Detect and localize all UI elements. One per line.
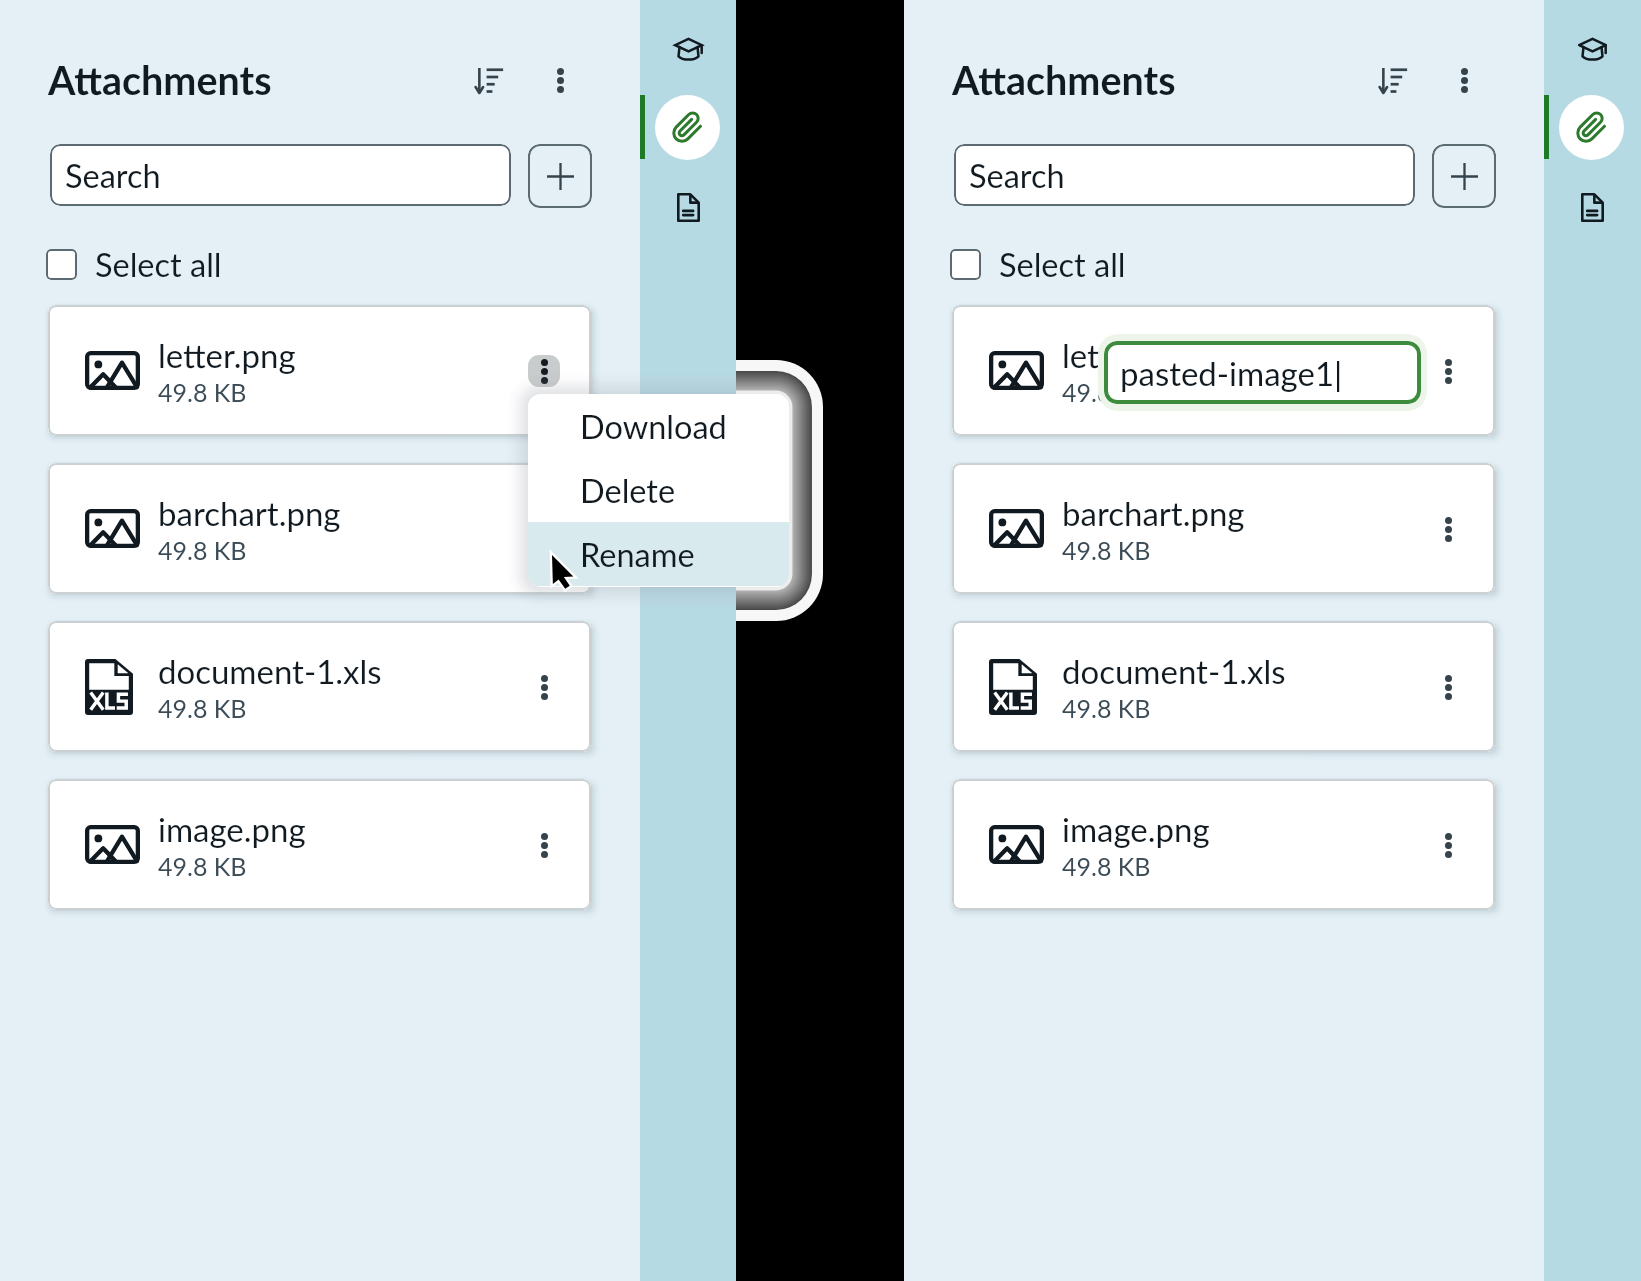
button[interactable]: File options [521, 822, 567, 868]
button[interactable]: Rename [528, 522, 789, 586]
staticText: barchart.png [158, 493, 341, 533]
staticText: 49.8 KB [158, 377, 247, 407]
button[interactable]: barchart.png [48, 463, 591, 594]
button[interactable]: document-1.xls [952, 621, 1495, 752]
staticText: document-1.xls [158, 651, 382, 691]
staticText: Attachments [952, 56, 1176, 103]
button[interactable]: More options [536, 56, 584, 104]
staticText: 49.8 KB [1062, 377, 1151, 407]
staticText: 49.8 KB [1062, 851, 1151, 881]
staticText: Select all [95, 245, 222, 284]
button[interactable]: Delete [528, 458, 789, 522]
staticText: Attachments [48, 56, 272, 103]
button[interactable]: image.png [952, 779, 1495, 910]
button[interactable]: Documents [1560, 175, 1624, 239]
button[interactable]: Attachments [655, 95, 720, 160]
button[interactable]: letter.png [48, 305, 591, 436]
staticText: document-1.xls [1062, 651, 1286, 691]
button[interactable]: Add attachment [1432, 144, 1496, 208]
button[interactable]: File options [1425, 664, 1471, 710]
button[interactable]: image.png [48, 779, 591, 910]
button[interactable]: Download [528, 394, 789, 458]
staticText: pasted-image1| [1120, 353, 1343, 393]
button[interactable]: Select all [46, 242, 222, 286]
button[interactable]: document-1.xls [48, 621, 591, 752]
staticText: letter.png [158, 335, 296, 375]
button[interactable]: Search [50, 144, 511, 206]
staticText: 49.8 KB [158, 851, 247, 881]
button[interactable]: Add attachment [528, 144, 592, 208]
staticText: Delete [580, 471, 676, 510]
button[interactable]: More options [1440, 56, 1488, 104]
button[interactable]: letter.png [952, 305, 1495, 436]
button[interactable]: Learning [1560, 16, 1624, 80]
staticText: Select all [999, 245, 1126, 284]
button[interactable]: File options [521, 664, 567, 710]
staticText: Search [65, 156, 161, 195]
button[interactable]: Search [954, 144, 1415, 206]
button[interactable]: Documents [656, 175, 720, 239]
staticText: 49.8 KB [1062, 535, 1151, 565]
button[interactable]: Sort [465, 56, 513, 104]
staticText: Download [580, 407, 727, 446]
button[interactable]: File options [1425, 822, 1471, 868]
button[interactable]: File options [1425, 506, 1471, 552]
button[interactable]: Sort [1369, 56, 1417, 104]
button[interactable]: File options [521, 348, 567, 394]
button[interactable]: File options [1425, 348, 1471, 394]
staticText: letter.png [1062, 335, 1200, 375]
button[interactable]: Select all [950, 242, 1126, 286]
button[interactable]: File options [521, 506, 567, 552]
staticText: Rename [580, 535, 695, 574]
staticText: 49.8 KB [158, 535, 247, 565]
button[interactable]: Learning [656, 16, 720, 80]
button[interactable]: pasted-image1| [1104, 341, 1421, 404]
staticText: image.png [1062, 809, 1210, 849]
staticText: 49.8 KB [1062, 693, 1151, 723]
staticText: image.png [158, 809, 306, 849]
staticText: barchart.png [1062, 493, 1245, 533]
staticText: 49.8 KB [158, 693, 247, 723]
button[interactable]: Attachments [1559, 95, 1624, 160]
button[interactable]: barchart.png [952, 463, 1495, 594]
staticText: Search [969, 156, 1065, 195]
